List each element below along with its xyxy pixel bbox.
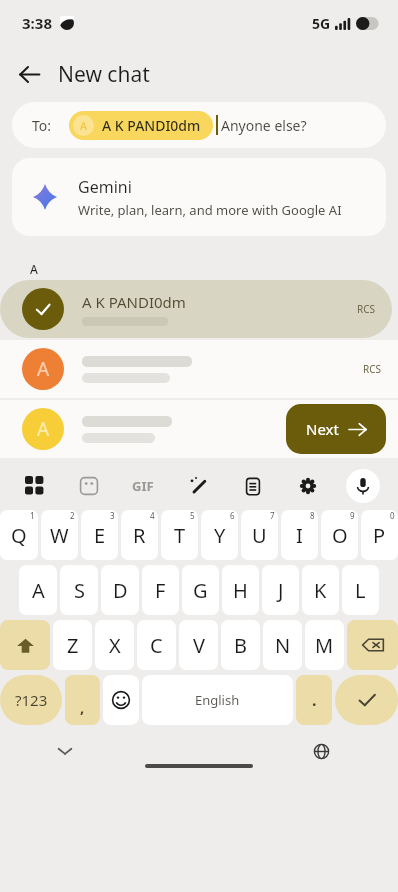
button[interactable]: T xyxy=(161,510,198,560)
staticText: 5G xyxy=(312,14,331,33)
button[interactable]: Comma xyxy=(65,675,100,725)
staticText: English xyxy=(195,691,240,709)
staticText: X xyxy=(109,632,121,659)
staticText: RCS xyxy=(363,362,382,376)
staticText: K xyxy=(314,577,327,604)
button[interactable]: To: xyxy=(12,102,386,148)
staticText: A K PANDI0dm xyxy=(82,292,186,312)
staticText: Y xyxy=(214,522,226,549)
button[interactable]: English xyxy=(142,675,293,725)
button[interactable]: K xyxy=(302,565,339,615)
staticText: Q xyxy=(11,522,27,549)
staticText: 2 xyxy=(70,510,75,521)
button[interactable]: N xyxy=(263,620,302,670)
button[interactable]: A xyxy=(0,400,398,458)
staticText: A xyxy=(80,118,88,133)
staticText: N xyxy=(275,632,291,659)
staticText: 4 xyxy=(150,510,155,521)
staticText: L xyxy=(355,577,366,604)
staticText: C xyxy=(150,632,163,659)
staticText: U xyxy=(252,522,267,549)
staticText: I xyxy=(296,522,303,549)
staticText: Next xyxy=(306,419,339,439)
button[interactable]: Q xyxy=(0,510,38,560)
staticText: A xyxy=(32,577,45,604)
staticText: D xyxy=(113,577,128,604)
button[interactable]: Period xyxy=(296,675,332,725)
staticText: 0 xyxy=(390,510,395,521)
staticText: A K PANDI0dm xyxy=(102,116,201,135)
button[interactable]: L xyxy=(342,565,379,615)
button[interactable]: X xyxy=(95,620,134,670)
button[interactable]: B xyxy=(221,620,260,670)
button[interactable]: J xyxy=(262,565,299,615)
staticText: Z xyxy=(67,632,79,659)
button[interactable]: F xyxy=(142,565,179,615)
button[interactable]: Gemini xyxy=(12,158,386,236)
staticText: New chat xyxy=(58,60,150,89)
staticText: To: xyxy=(32,116,52,135)
staticText: 1 xyxy=(30,510,35,521)
staticText: A xyxy=(37,416,50,442)
staticText: W xyxy=(50,522,69,549)
staticText: 3:38 xyxy=(22,13,52,33)
staticText: , xyxy=(80,697,85,717)
button[interactable]: A xyxy=(73,111,201,140)
staticText: G xyxy=(193,577,208,604)
button[interactable]: D xyxy=(101,565,139,615)
button[interactable]: G xyxy=(182,565,219,615)
staticText: Gemini xyxy=(78,176,132,198)
staticText: R xyxy=(133,522,146,549)
button[interactable]: C xyxy=(137,620,176,670)
button[interactable]: Change language xyxy=(306,736,336,766)
button[interactable]: ?123 xyxy=(0,675,62,725)
staticText: M xyxy=(315,632,334,659)
staticText: E xyxy=(94,522,106,549)
button[interactable]: U xyxy=(241,510,278,560)
button[interactable]: Stickers xyxy=(62,462,116,510)
staticText: 5 xyxy=(190,510,195,521)
staticText: B xyxy=(234,632,247,659)
button[interactable]: Apps xyxy=(8,462,62,510)
button[interactable]: Enter xyxy=(335,675,398,725)
staticText: Write, plan, learn, and more with Google… xyxy=(78,201,342,219)
staticText: H xyxy=(233,577,248,604)
button[interactable]: Y xyxy=(201,510,238,560)
button[interactable]: E xyxy=(81,510,118,560)
button[interactable]: P xyxy=(361,510,398,560)
staticText: ?123 xyxy=(15,690,48,710)
button[interactable]: Next xyxy=(286,404,386,454)
staticText: Anyone else? xyxy=(221,116,307,135)
button[interactable]: A xyxy=(0,340,398,398)
button[interactable]: S xyxy=(60,565,98,615)
staticText: A xyxy=(37,356,50,382)
staticText: J xyxy=(278,577,284,604)
button[interactable]: Emoji xyxy=(103,675,139,725)
button[interactable]: R xyxy=(121,510,158,560)
staticText: . xyxy=(312,689,317,711)
button[interactable]: Settings xyxy=(280,462,335,510)
staticText: RCS xyxy=(357,302,376,316)
button[interactable]: Backspace xyxy=(347,620,398,670)
staticText: 3 xyxy=(110,510,115,521)
button[interactable]: H xyxy=(222,565,259,615)
staticText: 8 xyxy=(310,510,315,521)
button[interactable]: Magic compose xyxy=(170,462,225,510)
button[interactable]: Shift xyxy=(0,620,50,670)
button[interactable]: Z xyxy=(53,620,92,670)
button[interactable]: Voice input xyxy=(346,469,380,503)
button[interactable]: A K PANDI0dm xyxy=(0,280,392,338)
button[interactable]: Back xyxy=(6,51,52,97)
button[interactable]: GIF xyxy=(116,462,170,510)
button[interactable]: M xyxy=(305,620,344,670)
staticText: 9 xyxy=(350,510,355,521)
button[interactable]: A xyxy=(19,565,57,615)
button[interactable]: Clipboard xyxy=(225,462,280,510)
button[interactable]: Hide keyboard xyxy=(48,734,82,768)
button[interactable]: W xyxy=(41,510,78,560)
staticText: V xyxy=(193,632,205,659)
button[interactable]: I xyxy=(281,510,318,560)
button[interactable]: O xyxy=(321,510,358,560)
button[interactable]: V xyxy=(179,620,218,670)
staticText: A xyxy=(30,261,38,277)
